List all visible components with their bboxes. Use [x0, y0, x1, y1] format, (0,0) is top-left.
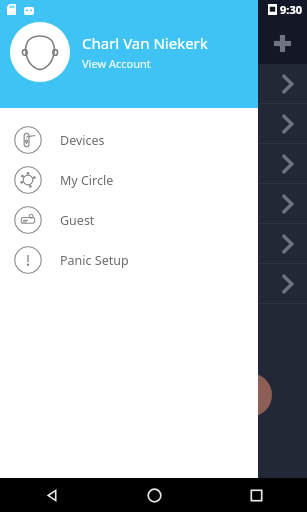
- staticText: Guest: [60, 212, 95, 229]
- staticText: Devices: [60, 132, 105, 149]
- button[interactable]: Charl Van Niekerk: [10, 22, 248, 82]
- button[interactable]: Recents: [205, 478, 307, 512]
- staticText: Panic Setup: [60, 252, 129, 269]
- staticText: Sign Out: [13, 475, 62, 491]
- button[interactable]: [0, 184, 307, 224]
- button[interactable]: My Circle: [0, 160, 258, 200]
- button[interactable]: [0, 224, 307, 264]
- staticText: My Circle: [60, 172, 114, 189]
- button[interactable]: [0, 64, 307, 104]
- button[interactable]: Back: [0, 478, 103, 512]
- button[interactable]: Home: [103, 478, 205, 512]
- staticText: Charl Van Niekerk: [82, 33, 208, 53]
- button[interactable]: Devices: [0, 120, 258, 160]
- staticText: View Account: [82, 56, 151, 71]
- button[interactable]: Panic Setup: [0, 240, 258, 280]
- button[interactable]: Guest: [0, 200, 258, 240]
- button[interactable]: Sign Out: [0, 466, 258, 500]
- staticText: 9:30: [280, 2, 302, 17]
- button[interactable]: [0, 104, 307, 144]
- button[interactable]: Add: [267, 28, 297, 58]
- button[interactable]: [0, 264, 307, 304]
- button[interactable]: [0, 144, 307, 184]
